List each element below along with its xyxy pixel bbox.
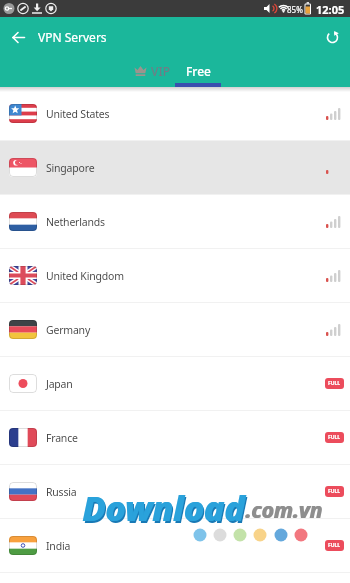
button[interactable]: Russia — [0, 465, 350, 519]
staticText: FULL — [328, 434, 341, 441]
button[interactable]: France — [0, 411, 350, 465]
button[interactable]: Japan — [0, 357, 350, 411]
staticText: Free — [186, 63, 211, 79]
button[interactable]: Free — [175, 55, 221, 86]
staticText: United Kingdom — [46, 269, 124, 283]
staticText: United States — [46, 107, 110, 121]
staticText: India — [46, 539, 71, 553]
staticText: Singapore — [46, 161, 95, 175]
staticText: Japan — [46, 377, 73, 391]
staticText: France — [46, 431, 78, 445]
staticText: Germany — [46, 323, 91, 337]
staticText: 12:05 — [316, 2, 345, 17]
button[interactable] — [0, 19, 36, 55]
button[interactable]: United Kingdom — [0, 249, 350, 303]
staticText: Netherlands — [46, 215, 105, 229]
staticText: Download — [82, 485, 245, 531]
button[interactable]: India — [0, 519, 350, 573]
staticText: VIP — [151, 63, 170, 79]
staticText: VPN Servers — [38, 29, 107, 45]
button[interactable]: VIP — [129, 55, 175, 86]
button[interactable]: Germany — [0, 303, 350, 357]
staticText: FULL — [328, 542, 341, 549]
staticText: .com.vn — [246, 496, 323, 525]
button[interactable]: Netherlands — [0, 195, 350, 249]
staticText: 85% — [287, 4, 303, 15]
staticText: Russia — [46, 485, 77, 499]
staticText: FULL — [328, 380, 341, 387]
staticText: Download — [83, 485, 246, 531]
button[interactable] — [314, 19, 350, 55]
button[interactable]: Singapore — [0, 141, 350, 195]
staticText: FULL — [328, 488, 341, 495]
button[interactable]: United States — [0, 87, 350, 141]
staticText: Download — [84, 487, 247, 533]
staticText: .com.vn — [245, 496, 322, 525]
